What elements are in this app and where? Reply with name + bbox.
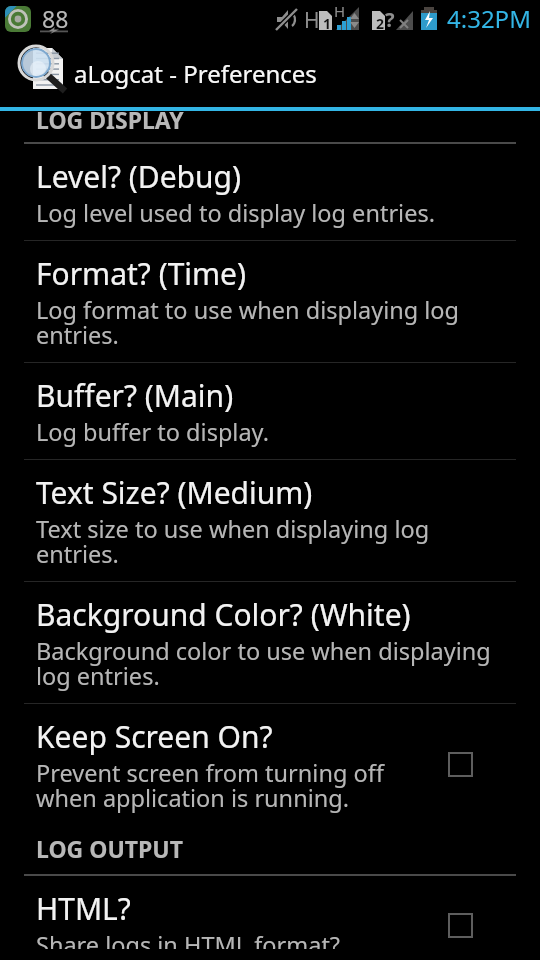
staticText: Log format to use when displaying log en…	[36, 294, 496, 351]
staticText: 88	[42, 3, 69, 34]
staticText: H	[304, 6, 320, 35]
staticText: ?	[385, 6, 395, 33]
button[interactable]: HTML?	[0, 876, 540, 960]
staticText: LOG OUTPUT	[36, 833, 184, 864]
staticText: Background color to use when displaying …	[36, 635, 496, 692]
button[interactable]: Background Color? (White)	[0, 582, 540, 703]
button[interactable]: Text Size? (Medium)	[0, 460, 540, 581]
staticText: aLogcat - Preferences	[74, 57, 317, 90]
staticText: Log level used to display log entries.	[36, 197, 435, 229]
staticText: 2	[376, 14, 385, 33]
staticText: H	[334, 1, 346, 21]
staticText: Text size to use when displaying log ent…	[36, 513, 496, 570]
button[interactable]: Buffer? (Main)	[0, 363, 540, 459]
staticText: Log buffer to display.	[36, 416, 269, 448]
staticText: Keep Screen On?	[36, 716, 273, 757]
button[interactable]: Keep Screen On?	[0, 704, 540, 825]
button[interactable]: aLogcat - Preferences	[0, 39, 540, 107]
staticText: Text Size? (Medium)	[36, 472, 313, 513]
staticText: 1	[323, 14, 332, 33]
staticText: Background Color? (White)	[36, 594, 411, 635]
staticText: Share logs in HTML format?	[36, 929, 341, 949]
staticText: Format? (Time)	[36, 253, 247, 294]
button[interactable]: Level? (Debug)	[0, 144, 540, 240]
staticText: HTML?	[36, 888, 131, 929]
staticText: Prevent screen from turning off when app…	[36, 757, 428, 814]
staticText: Level? (Debug)	[36, 156, 242, 197]
staticText: LOG DISPLAY	[36, 104, 184, 135]
staticText: Buffer? (Main)	[36, 375, 234, 416]
staticText: 4:32PM	[447, 2, 531, 35]
button[interactable]: Format? (Time)	[0, 241, 540, 362]
